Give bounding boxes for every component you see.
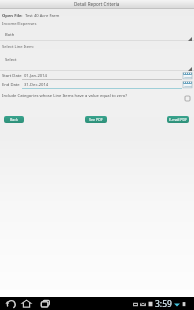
staticText: 31-Dec-2014 bbox=[24, 82, 49, 88]
staticText: Open File: bbox=[2, 13, 23, 19]
button[interactable]: Include categories with zero value bbox=[185, 96, 190, 101]
button[interactable]: See PDF bbox=[85, 116, 107, 123]
staticText: End Date bbox=[2, 82, 20, 88]
button[interactable] bbox=[0, 54, 194, 64]
button[interactable] bbox=[22, 80, 182, 88]
staticText: Income/Expenses bbox=[2, 21, 37, 27]
staticText: 01-Jan-2014 bbox=[24, 73, 47, 79]
staticText: E-mail PDF bbox=[169, 117, 187, 122]
staticText: Test 40 Acre Farm bbox=[25, 13, 60, 19]
button[interactable]: Back bbox=[4, 116, 24, 123]
staticText: See PDF bbox=[89, 117, 103, 122]
button[interactable]: Home bbox=[20, 297, 33, 310]
button[interactable] bbox=[0, 29, 194, 39]
staticText: 3:59 bbox=[155, 298, 172, 310]
button[interactable]: Pick End Date bbox=[183, 81, 192, 88]
staticText: Select bbox=[5, 57, 17, 63]
button[interactable]: Pick Start Date bbox=[183, 72, 192, 79]
button[interactable]: Back bbox=[4, 297, 17, 310]
staticText: Select Line Item: bbox=[2, 44, 34, 50]
button[interactable]: Recent apps bbox=[39, 297, 52, 310]
staticText: Start Date bbox=[2, 73, 22, 79]
staticText: Include Categories whose Line Items have… bbox=[2, 93, 128, 99]
staticText: Both bbox=[5, 32, 15, 38]
staticText: Back bbox=[10, 117, 18, 122]
button[interactable]: E-mail PDF bbox=[167, 116, 189, 123]
staticText: Detail Report Criteria bbox=[74, 1, 120, 7]
button[interactable] bbox=[22, 71, 182, 79]
